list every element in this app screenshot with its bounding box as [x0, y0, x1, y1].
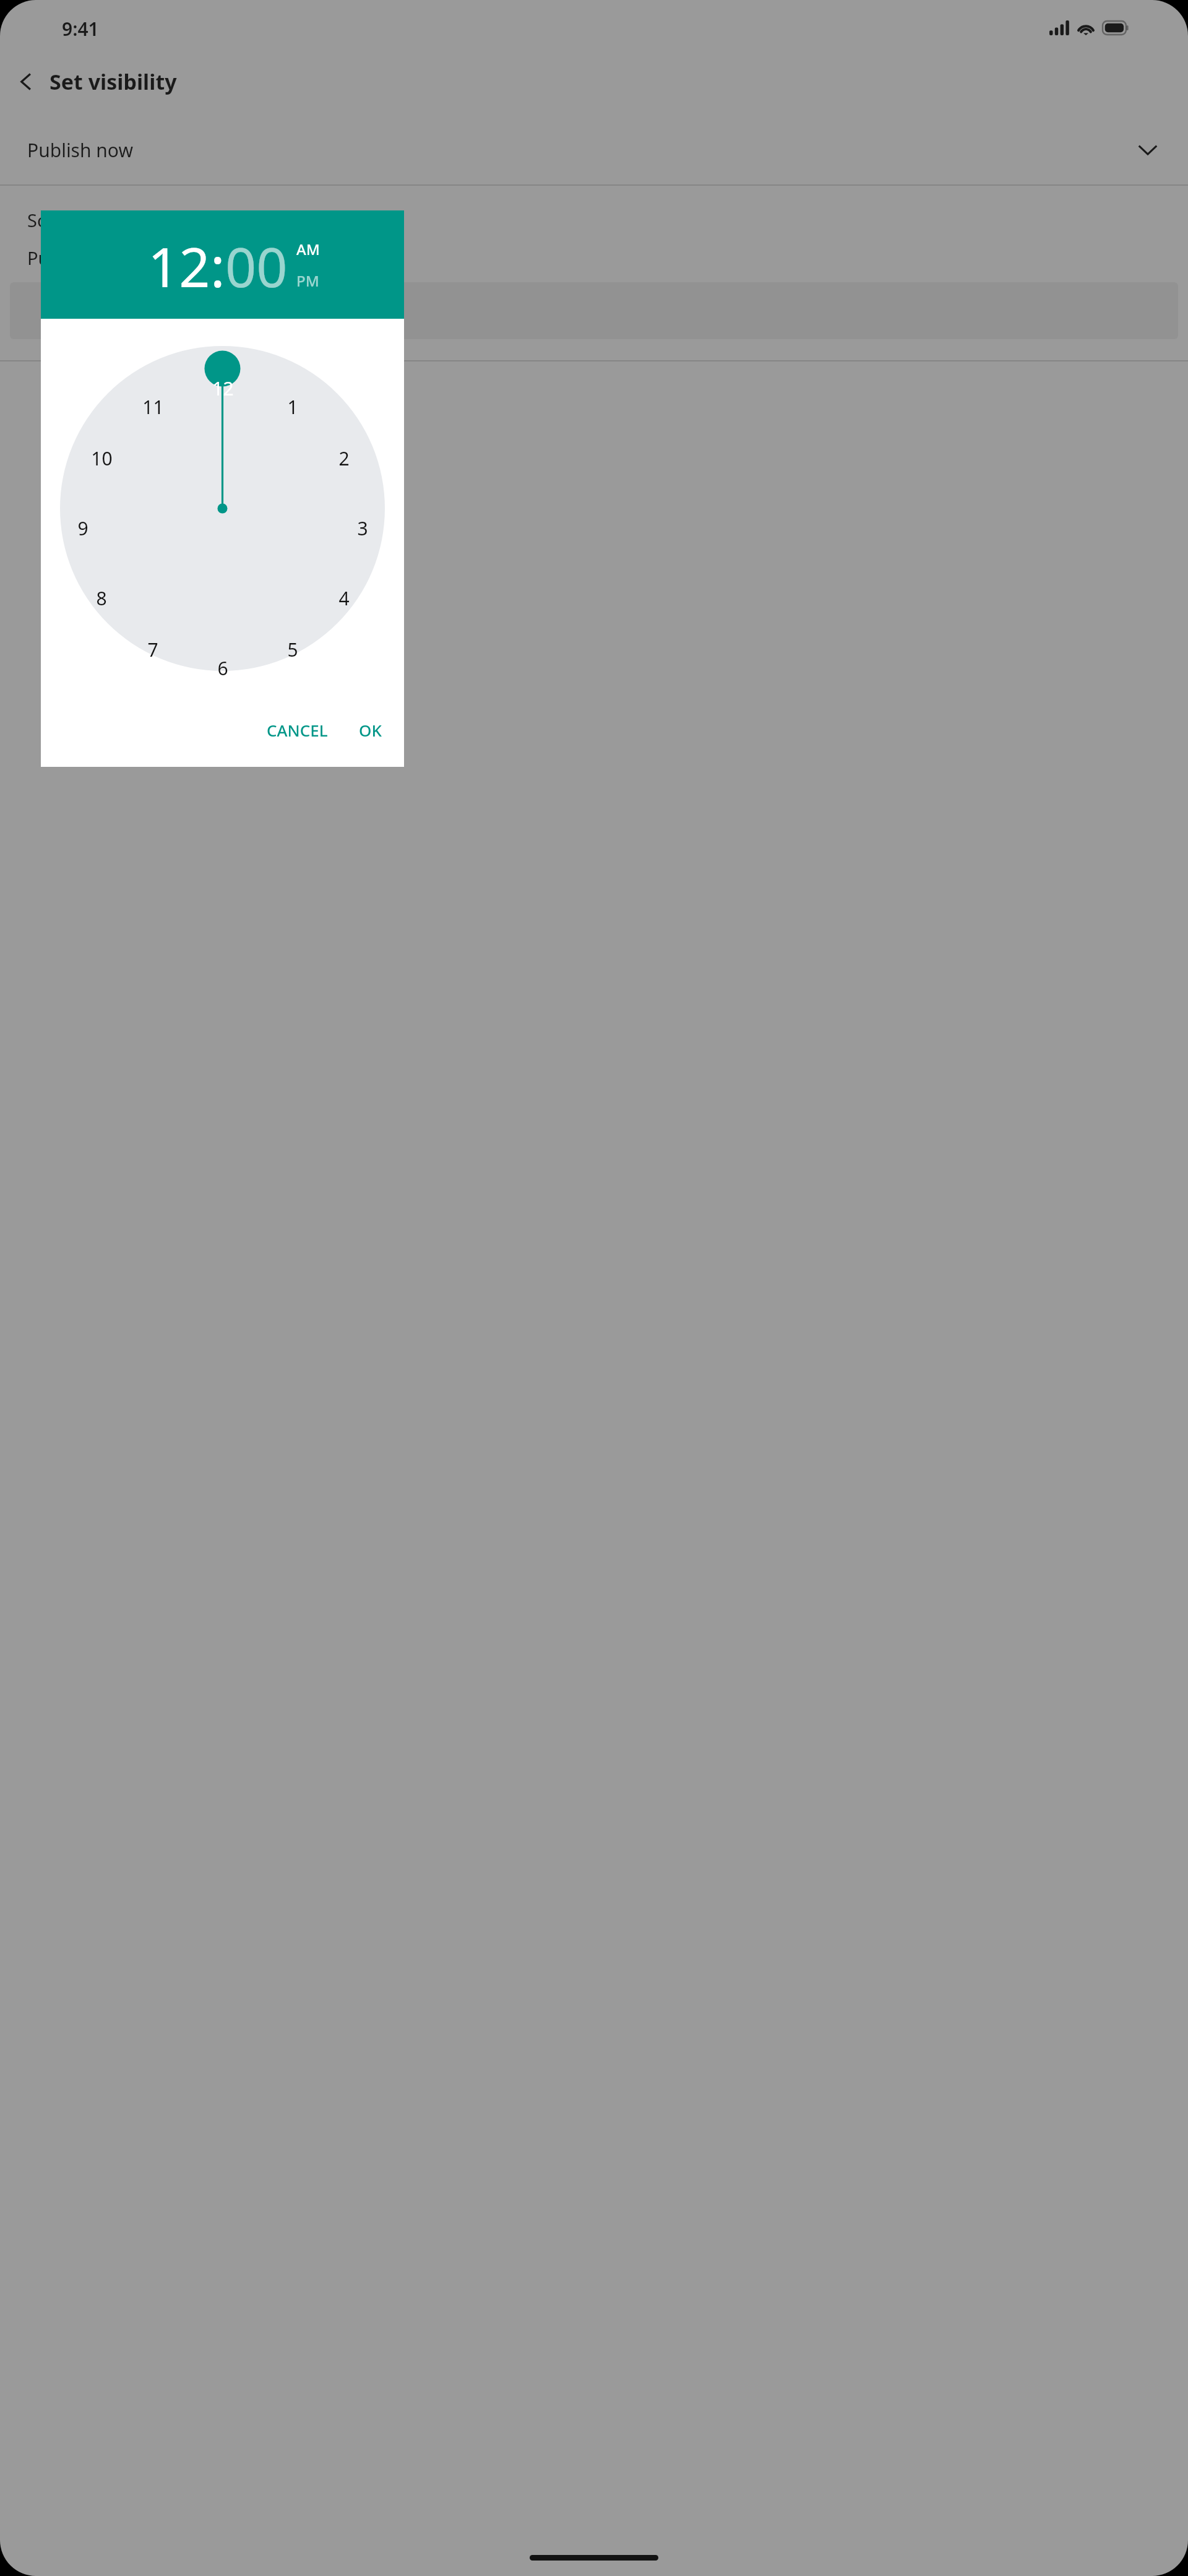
button[interactable]: Publish now — [0, 115, 1188, 184]
staticText: 6 — [217, 655, 228, 681]
staticText: 8 — [96, 586, 107, 611]
staticText: 9 — [77, 516, 88, 541]
staticText: CANCEL — [267, 719, 328, 741]
staticText: OK — [359, 719, 382, 741]
button[interactable]: 9 — [64, 509, 102, 547]
button[interactable]: 6 — [204, 649, 242, 687]
button[interactable]: 4 — [325, 579, 363, 617]
button[interactable]: CANCEL — [257, 712, 338, 748]
staticText: 10 — [91, 446, 113, 471]
button[interactable]: 8 — [82, 579, 121, 617]
staticText: Publish now — [27, 137, 133, 163]
staticText: Set visibility — [49, 67, 177, 96]
staticText: 12 — [212, 376, 234, 401]
button[interactable]: 1 — [273, 387, 312, 426]
staticText: : — [210, 229, 225, 303]
button[interactable]: 11 — [134, 387, 172, 426]
button[interactable]: 12 — [148, 229, 210, 303]
staticText: 9:41 — [62, 16, 99, 41]
button[interactable]: Clock dial — [60, 346, 385, 671]
button[interactable]: 12 — [204, 369, 242, 407]
button[interactable] — [10, 282, 1178, 339]
button[interactable]: 2 — [325, 439, 363, 477]
staticText: 3 — [357, 516, 368, 541]
staticText: Schedule — [27, 208, 104, 232]
staticText: 1 — [287, 394, 298, 420]
staticText: Publish date — [27, 246, 132, 270]
staticText: 4 — [338, 586, 350, 611]
staticText: 5 — [287, 637, 298, 662]
staticText: 11 — [142, 394, 164, 420]
staticText: 7 — [147, 637, 158, 662]
button[interactable]: 3 — [343, 509, 382, 547]
button[interactable]: PM — [296, 270, 319, 291]
button[interactable]: 7 — [134, 630, 172, 668]
button[interactable]: OK — [349, 712, 392, 748]
button[interactable]: 10 — [82, 439, 121, 477]
button[interactable]: AM — [296, 239, 320, 259]
staticText: 2 — [338, 446, 350, 471]
button[interactable]: 00 — [225, 229, 288, 303]
button[interactable]: 5 — [273, 630, 312, 668]
button[interactable]: Back — [9, 64, 43, 99]
